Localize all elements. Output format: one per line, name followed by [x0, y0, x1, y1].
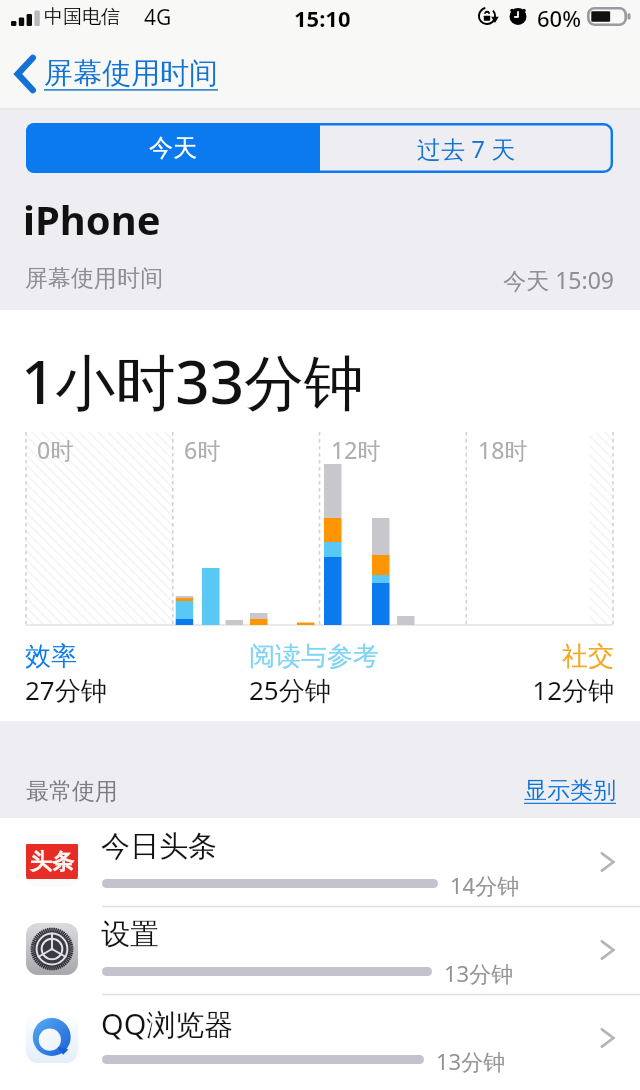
- staticText: 屏幕使用时间: [25, 264, 163, 293]
- other: Details: [599, 850, 617, 874]
- staticText: 4G: [144, 3, 172, 32]
- other: Details: [599, 1026, 617, 1050]
- staticText: 屏幕使用时间: [44, 55, 218, 92]
- staticText: 14分钟: [450, 870, 520, 900]
- button[interactable]: 屏幕使用时间: [12, 48, 218, 100]
- button[interactable]: 显示类别: [524, 776, 616, 805]
- staticText: 今日头条: [101, 828, 217, 865]
- staticText: 1小时33分钟: [21, 340, 364, 422]
- staticText: QQ浏览器: [101, 1004, 234, 1044]
- button[interactable]: QQ浏览器: [0, 994, 640, 1082]
- staticText: 6时: [184, 434, 221, 465]
- staticText: 过去 7 天: [417, 132, 516, 165]
- staticText: 最常使用: [26, 777, 118, 806]
- button[interactable]: 过去 7 天: [320, 123, 613, 173]
- staticText: 13分钟: [436, 1046, 506, 1076]
- staticText: 头条: [30, 848, 74, 876]
- staticText: 12时: [331, 434, 381, 465]
- staticText: 今天 15:09: [0, 264, 614, 295]
- staticText: iPhone: [23, 192, 161, 246]
- staticText: 今天: [149, 133, 197, 163]
- staticText: 27分钟: [25, 672, 107, 708]
- staticText: 15:10: [294, 3, 351, 33]
- staticText: 0时: [37, 434, 74, 465]
- staticText: 12分钟: [0, 672, 614, 708]
- staticText: 13分钟: [444, 958, 514, 988]
- staticText: 60%: [537, 3, 581, 33]
- staticText: 社交: [0, 640, 614, 673]
- staticText: 显示类别: [524, 776, 616, 805]
- button[interactable]: 设置: [0, 906, 640, 994]
- staticText: 效率: [25, 640, 77, 673]
- staticText: 25分钟: [249, 672, 331, 708]
- staticText: 设置: [101, 916, 159, 953]
- other: Details: [599, 938, 617, 962]
- staticText: 18时: [478, 434, 528, 465]
- button[interactable]: 今天: [26, 123, 320, 173]
- staticText: 中国电信: [44, 5, 120, 29]
- staticText: 阅读与参考: [249, 640, 379, 673]
- button[interactable]: 头条: [0, 818, 640, 906]
